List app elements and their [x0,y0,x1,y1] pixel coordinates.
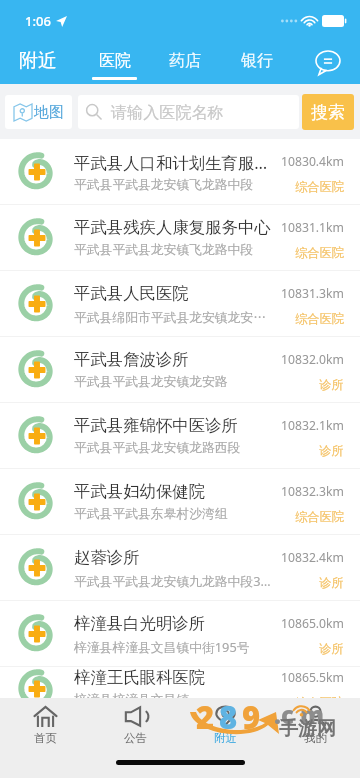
staticText: 10832.3km [281,483,344,500]
button[interactable]: 请输入医院名称 [78,95,299,129]
staticText: 请输入医院名称 [111,102,224,122]
staticText: 首页 [34,731,57,745]
staticText: 梓潼王氏眼科医院 [74,667,206,688]
staticText: 综合医院 [295,245,344,260]
staticText: 诊所 [319,641,344,656]
staticText: .c m [274,698,325,731]
staticText: 诊所 [319,443,344,458]
staticText: 10865.0km [281,615,344,632]
staticText: 诊所 [319,377,344,392]
staticText: 平武县平武县龙安镇飞龙路中段 [74,242,254,258]
staticText: 梓潼县梓潼县文昌镇 [74,692,190,698]
button[interactable]: 地图 [5,95,72,129]
staticText: 平武县平武县东皋村沙湾组 [74,506,228,522]
staticText: 梓潼县白光明诊所 [74,613,206,634]
staticText: 综合医院 [295,695,344,698]
staticText: 药店 [169,51,201,71]
button[interactable]: 梓潼县白光明诊所 [0,601,360,667]
staticText: 平武县平武县龙安镇龙路西段 [74,440,241,456]
button[interactable]: 公告 [90,704,180,754]
staticText: 手游网 [279,717,336,741]
button[interactable]: 搜索 [302,94,354,130]
staticText: 9 [242,696,261,738]
staticText: 梓潼县梓潼县文昌镇中街195号 [74,638,250,655]
staticText: 10832.0km [281,351,344,368]
staticText: 综合医院 [295,179,344,194]
staticText: 搜索 [311,102,345,123]
button[interactable]: 附近 [180,704,270,754]
button[interactable]: 梓潼王氏眼科医院 [0,667,360,698]
staticText: 附近 [214,731,237,745]
button[interactable]: 药店 [154,40,215,82]
button[interactable]: 平武县妇幼保健院 [0,469,360,535]
staticText: 地图 [34,103,64,122]
staticText: 平武县绵阳市平武县龙安镇龙安路1… [74,308,275,325]
staticText: 我的 [304,731,327,745]
staticText: 10832.1km [281,417,344,434]
staticText: 10865.5km [281,669,344,686]
staticText: 公告 [124,731,147,745]
button[interactable]: 平武县人口和计划生育服… [0,139,360,205]
staticText: 10831.1km [281,219,344,236]
staticText: 1:06 [25,12,51,30]
staticText: 平武县平武县龙安镇飞龙路中段 [74,177,254,193]
button[interactable]: 首页 [0,704,90,754]
staticText: 10830.4km [281,153,344,170]
button[interactable]: 附近 [7,40,68,82]
staticText: 平武县詹波诊所 [74,349,189,370]
button[interactable]: 平武县雍锦怀中医诊所 [0,403,360,469]
staticText: 平武县残疾人康复服务中心 [74,217,271,238]
staticText: 综合医院 [295,509,344,524]
button[interactable]: 医院 [84,42,144,84]
staticText: 银行 [241,51,273,71]
button[interactable]: 银行 [226,40,287,82]
staticText: 8 [219,696,238,738]
staticText: 平武县人口和计划生育服… [74,151,268,173]
staticText: 附近 [19,49,57,73]
staticText: 平武县平武县龙安镇龙安路 [74,374,228,390]
button[interactable]: 我的 [270,704,360,754]
staticText: 平武县平武县龙安镇九龙路中段30号 [74,572,275,589]
staticText: 医院 [99,51,131,71]
button[interactable]: 赵蓉诊所 [0,535,360,601]
staticText: 2 [196,696,215,738]
staticText: 平武县人民医院 [74,283,189,304]
button[interactable]: Messages [316,51,340,75]
button[interactable]: 平武县残疾人康复服务中心 [0,205,360,271]
staticText: 10832.4km [281,549,344,566]
button[interactable]: 平武县詹波诊所 [0,337,360,403]
staticText: 诊所 [319,575,344,590]
staticText: 10831.3km [281,285,344,302]
staticText: 综合医院 [295,311,344,326]
button[interactable]: 平武县人民医院 [0,271,360,337]
staticText: 平武县妇幼保健院 [74,481,206,502]
staticText: 平武县雍锦怀中医诊所 [74,415,238,436]
staticText: 赵蓉诊所 [74,547,140,568]
